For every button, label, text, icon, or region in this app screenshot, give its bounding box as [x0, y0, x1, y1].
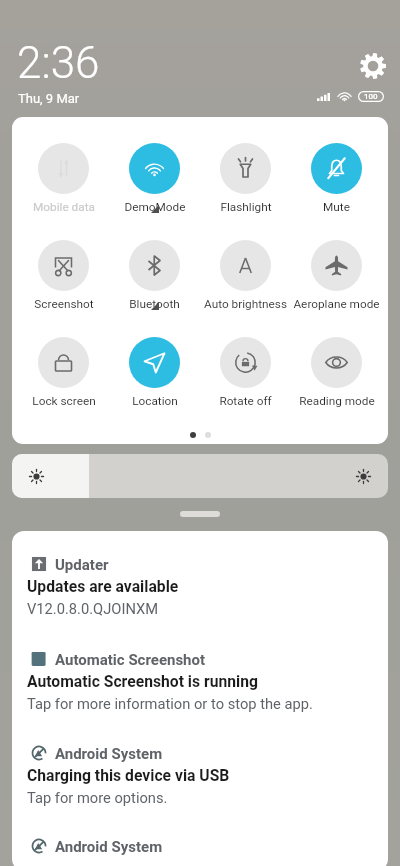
staticText: Thu, 9 Mar [18, 91, 80, 106]
button[interactable]: Mute [291, 143, 382, 217]
staticText: Reading mode [299, 394, 375, 408]
button[interactable]: Flashlight [200, 143, 291, 217]
button[interactable]: Android System [12, 834, 388, 862]
staticText: Automatic Screenshot is running [27, 672, 258, 690]
button[interactable]: Screenshot [18, 240, 109, 314]
button[interactable]: Rotate off [200, 337, 291, 411]
button[interactable]: Auto brightness [200, 240, 291, 314]
staticText: Screenshot [34, 297, 94, 311]
button[interactable]: Reading mode [291, 337, 382, 411]
staticText: Bluetooth [129, 297, 180, 311]
button[interactable]: Location [109, 337, 200, 411]
button[interactable]: Settings [356, 49, 389, 82]
staticText: 2:36 [17, 37, 100, 89]
staticText: Location [132, 394, 178, 408]
staticText: Flashlight [220, 200, 272, 214]
staticText: Charging this device via USB [27, 766, 230, 784]
button[interactable]: Lock screen [18, 337, 109, 411]
staticText: V12.0.8.0.QJOINXM [27, 600, 159, 617]
staticText: Android System [55, 745, 163, 763]
button[interactable]: DemoMode [109, 143, 200, 217]
button[interactable]: Mobile data [18, 143, 109, 217]
staticText: Lock screen [32, 394, 96, 408]
staticText: Updater [55, 556, 109, 574]
staticText: Rotate off [219, 394, 272, 408]
staticText: Auto brightness [204, 297, 287, 311]
button[interactable]: Automatic Screenshot [12, 647, 388, 721]
staticText: Aeroplane mode [293, 297, 380, 311]
staticText: Updates are available [27, 577, 179, 595]
button[interactable]: Aeroplane mode [291, 240, 382, 314]
staticText: Tap for more information or to stop the … [27, 695, 313, 712]
staticText: Android System [55, 838, 163, 856]
button[interactable]: Bluetooth [109, 240, 200, 314]
staticText: Automatic Screenshot [55, 651, 206, 669]
button[interactable]: Brightness [12, 454, 388, 498]
button[interactable]: Android System [12, 741, 388, 815]
button[interactable]: Updater [12, 552, 388, 626]
staticText: Mobile data [33, 200, 95, 214]
staticText: Tap for more options. [27, 789, 168, 806]
staticText: DemoMode [124, 200, 186, 214]
staticText: Mute [323, 200, 350, 214]
staticText: 100 [364, 92, 378, 101]
